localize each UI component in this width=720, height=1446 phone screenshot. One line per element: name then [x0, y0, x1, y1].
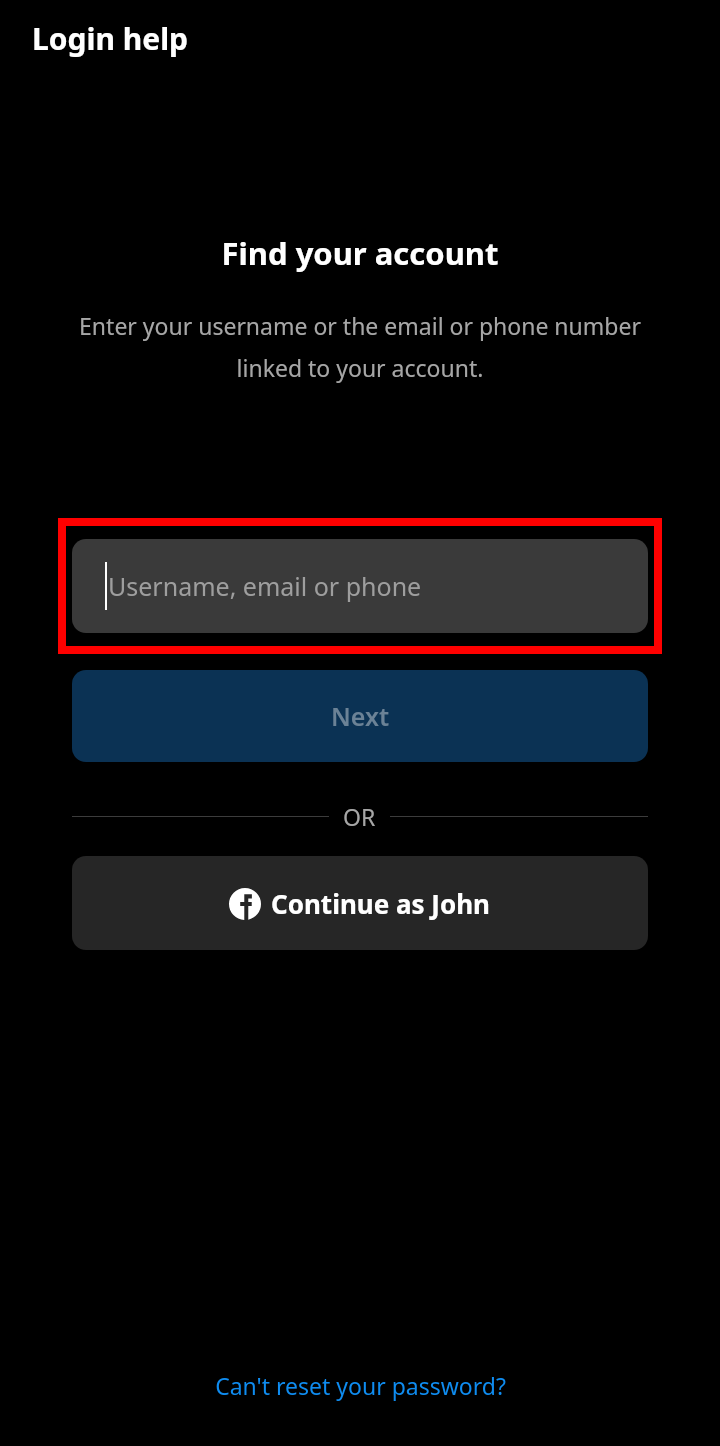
staticText: Username, email or phone — [108, 569, 422, 603]
other: Facebook — [229, 888, 261, 920]
staticText: Enter your username or the email or phon… — [74, 310, 646, 384]
staticText: Can't reset your password? — [215, 1370, 506, 1401]
staticText: Login help — [32, 18, 189, 59]
staticText: Find your account — [0, 232, 720, 274]
button[interactable]: Can't reset your password? — [203, 1364, 518, 1407]
staticText: OR — [343, 801, 376, 832]
button[interactable]: Username, email or phone — [72, 539, 648, 633]
button[interactable]: Next — [72, 670, 648, 762]
button[interactable]: Facebook — [72, 856, 648, 950]
staticText: Next — [331, 699, 390, 733]
staticText: Continue as John — [271, 886, 491, 921]
